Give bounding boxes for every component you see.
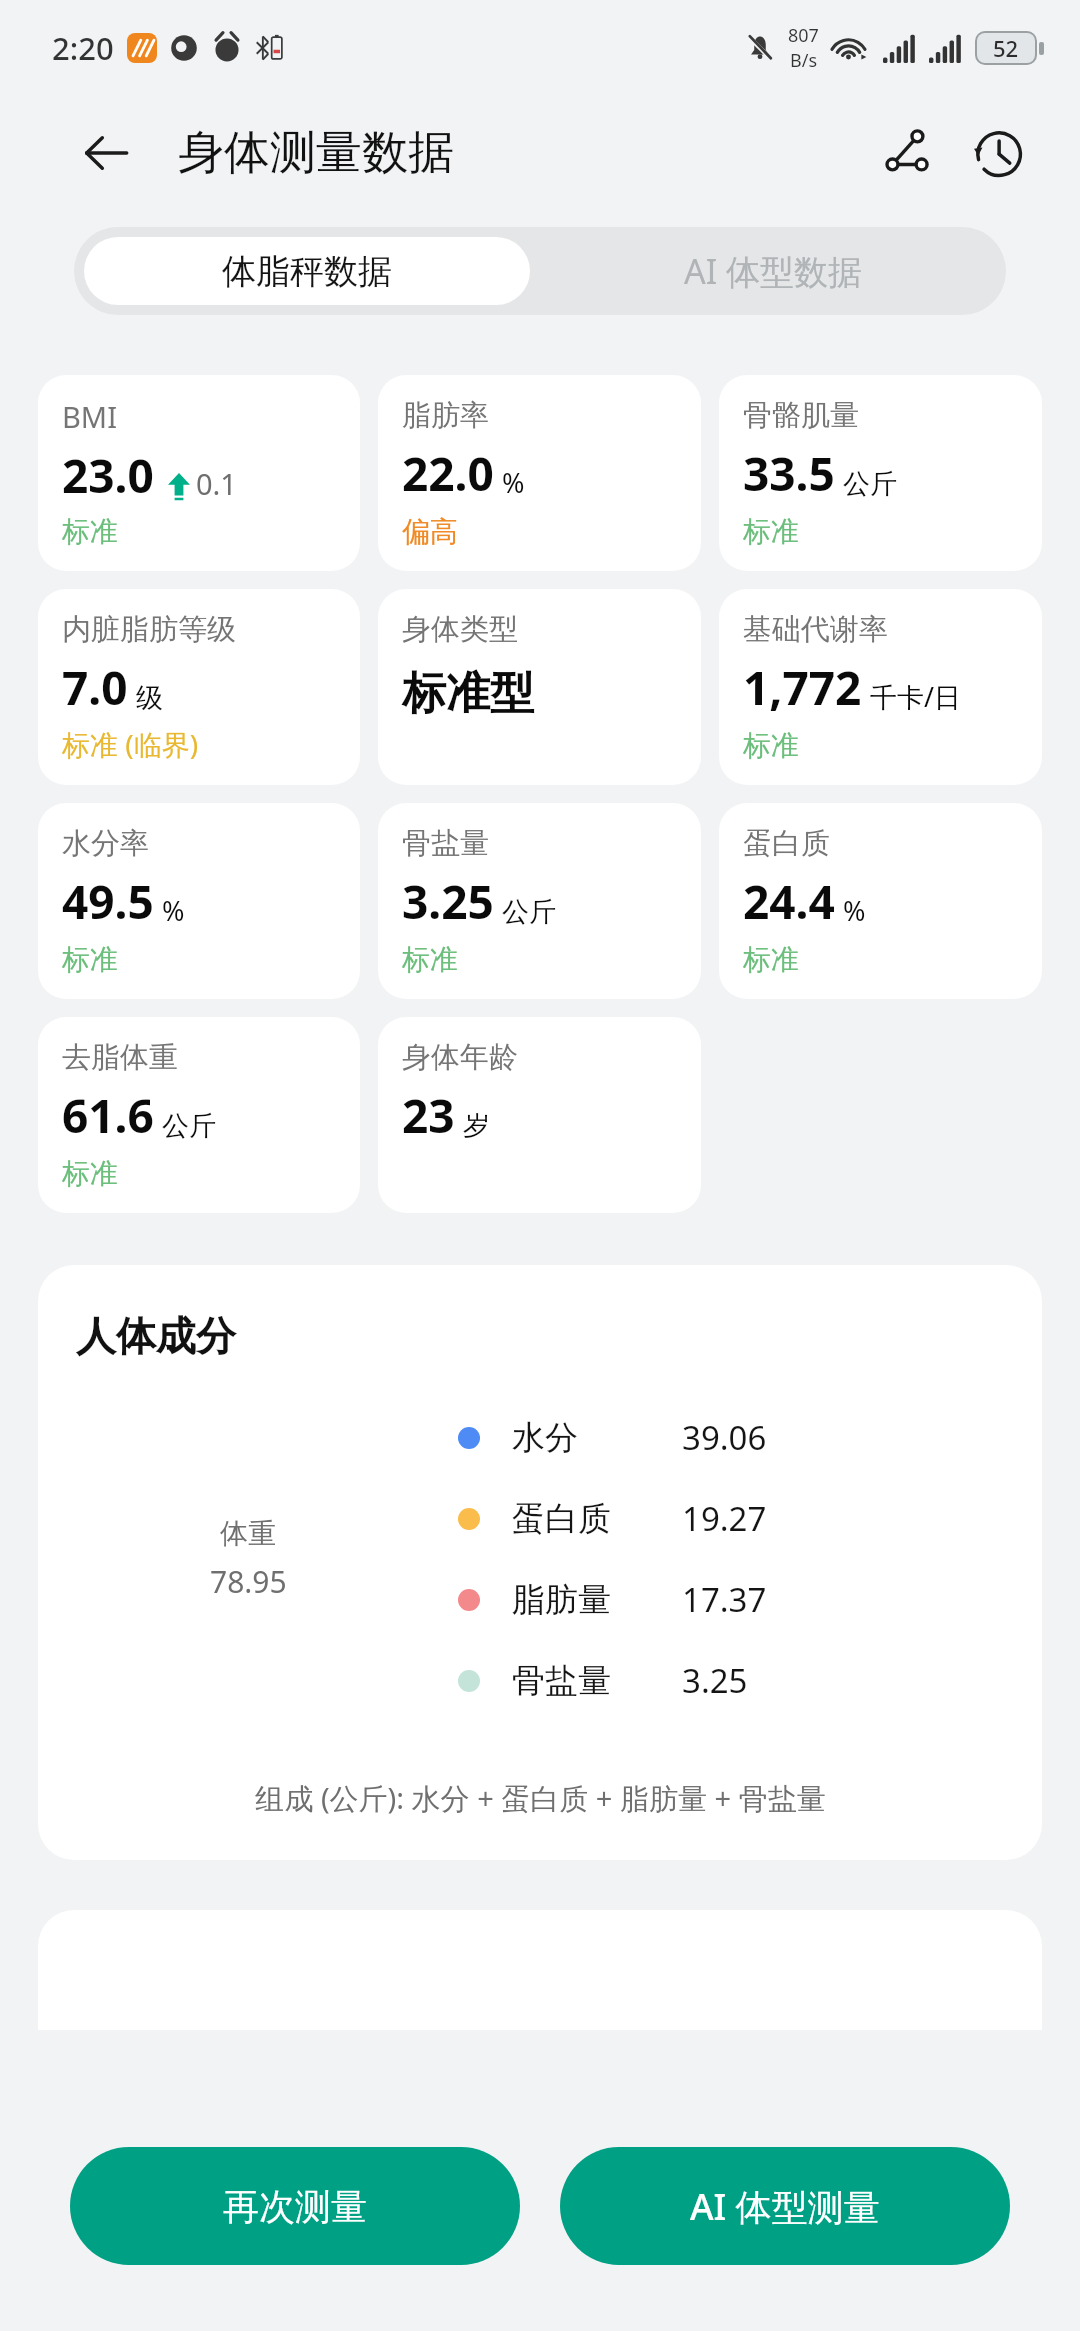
staticText: 0.1 xyxy=(196,464,237,503)
staticText: 水分率 xyxy=(62,825,149,862)
staticText: 体脂秤数据 xyxy=(222,250,392,293)
staticText: 标准 xyxy=(62,942,118,977)
staticText: 33.5 xyxy=(743,442,835,505)
staticText: 61.6 xyxy=(62,1084,154,1147)
staticText: 公斤 xyxy=(162,1109,216,1143)
staticText: 3.25 xyxy=(402,870,494,933)
staticText: AI 体型测量 xyxy=(690,2182,880,2231)
staticText: 基础代谢率 xyxy=(743,611,888,648)
staticText: 标准 xyxy=(62,1156,118,1191)
staticText: 身体类型 xyxy=(402,611,518,648)
staticText: 水分 xyxy=(512,1417,682,1459)
button[interactable]: 骨盐量 xyxy=(378,803,701,999)
button[interactable]: Share xyxy=(868,115,944,191)
button[interactable]: 人体成分 xyxy=(38,1265,1042,1860)
staticText: 内脏脂肪等级 xyxy=(62,611,236,648)
staticText: 1,772 xyxy=(743,656,862,719)
staticText: 标准 xyxy=(743,942,799,977)
button[interactable]: 体脂秤数据 xyxy=(84,237,530,305)
staticText: BMI xyxy=(62,397,117,436)
staticText: 脂肪量 xyxy=(512,1579,682,1621)
staticText: 807 xyxy=(788,23,819,48)
staticText: 级 xyxy=(136,681,163,715)
staticText: 标准 (临界) xyxy=(62,725,199,763)
staticText: 骨盐量 xyxy=(402,825,489,862)
staticText: 公斤 xyxy=(843,467,897,501)
button[interactable]: History xyxy=(960,115,1036,191)
staticText: % xyxy=(502,464,525,501)
button[interactable]: 蛋白质 xyxy=(719,803,1042,999)
staticText: 39.06 xyxy=(682,1415,767,1460)
staticText: % xyxy=(162,892,185,929)
staticText: 标准 xyxy=(402,942,458,977)
staticText: 公斤 xyxy=(502,895,556,929)
staticText: 23 xyxy=(402,1084,455,1147)
button[interactable]: 水分率 xyxy=(38,803,360,999)
staticText: AI 体型数据 xyxy=(684,248,863,294)
button[interactable]: Back xyxy=(70,117,142,189)
staticText: 17.37 xyxy=(682,1577,767,1622)
staticText: 标准 xyxy=(743,514,799,549)
staticText: 人体成分 xyxy=(76,1311,236,1361)
staticText: 身体年龄 xyxy=(402,1039,518,1076)
staticText: 3.25 xyxy=(682,1658,748,1703)
staticText: 骨盐量 xyxy=(512,1660,682,1702)
staticText: B/s xyxy=(790,48,818,73)
staticText: 体重 xyxy=(220,1516,276,1551)
staticText: 标准型 xyxy=(402,666,534,721)
staticText: 组成 (公斤): 水分 + 蛋白质 + 脂肪量 + 骨盐量 xyxy=(255,1778,826,1818)
staticText: 蛋白质 xyxy=(512,1498,682,1540)
staticText: 标准 xyxy=(62,514,118,549)
staticText: 骨骼肌量 xyxy=(743,397,859,434)
staticText: 2:20 xyxy=(52,27,114,69)
staticText: 19.27 xyxy=(682,1496,767,1541)
staticText: 去脂体重 xyxy=(62,1039,178,1076)
button[interactable]: AI 体型数据 xyxy=(540,227,1006,315)
staticText: 脂肪率 xyxy=(402,397,489,434)
staticText: 24.4 xyxy=(743,870,835,933)
button[interactable]: BMI xyxy=(38,375,360,571)
staticText: 蛋白质 xyxy=(743,825,830,862)
staticText: 49.5 xyxy=(62,870,154,933)
staticText: 78.95 xyxy=(210,1561,287,1602)
button[interactable]: AI 体型测量 xyxy=(560,2147,1010,2265)
staticText: 7.0 xyxy=(62,656,128,719)
staticText: 标准 xyxy=(743,728,799,763)
staticText: 身体测量数据 xyxy=(178,124,454,182)
button[interactable]: 身体年龄 xyxy=(378,1017,701,1213)
staticText: % xyxy=(843,892,866,929)
button[interactable]: 脂肪率 xyxy=(378,375,701,571)
button[interactable]: 基础代谢率 xyxy=(719,589,1042,785)
staticText: 千卡/日 xyxy=(870,678,962,715)
button[interactable]: 身体类型 xyxy=(378,589,701,785)
staticText: 22.0 xyxy=(402,442,494,505)
staticText: 再次测量 xyxy=(223,2184,367,2229)
staticText: 偏高 xyxy=(402,514,458,549)
button[interactable]: 骨骼肌量 xyxy=(719,375,1042,571)
button[interactable]: 内脏脂肪等级 xyxy=(38,589,360,785)
staticText: 23.0 xyxy=(62,444,154,507)
staticText: 岁 xyxy=(463,1109,490,1143)
staticText: 52 xyxy=(993,33,1019,63)
button[interactable]: 去脂体重 xyxy=(38,1017,360,1213)
button[interactable]: 再次测量 xyxy=(70,2147,520,2265)
